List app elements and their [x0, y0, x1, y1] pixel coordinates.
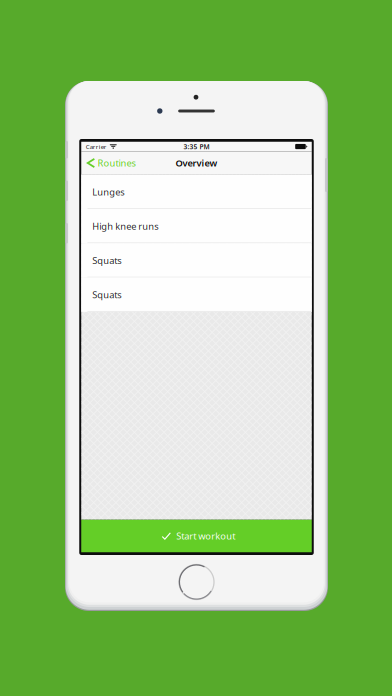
button[interactable]: Lunges: [81, 175, 312, 209]
staticText: Routines: [98, 157, 136, 169]
staticText: Lunges: [92, 185, 124, 198]
button[interactable]: Routines: [81, 151, 142, 175]
staticText: Start workout: [176, 530, 235, 542]
staticText: Squats: [92, 254, 121, 267]
button[interactable]: Squats: [81, 243, 312, 278]
button[interactable]: Squats: [81, 278, 312, 312]
staticText: Overview: [175, 157, 217, 169]
staticText: Squats: [92, 288, 121, 301]
button[interactable]: High knee runs: [81, 209, 312, 243]
staticText: Carrier: [86, 142, 107, 151]
button[interactable]: Start workout: [81, 520, 312, 552]
staticText: 3:35 PM: [183, 142, 209, 151]
staticText: High knee runs: [92, 220, 158, 232]
